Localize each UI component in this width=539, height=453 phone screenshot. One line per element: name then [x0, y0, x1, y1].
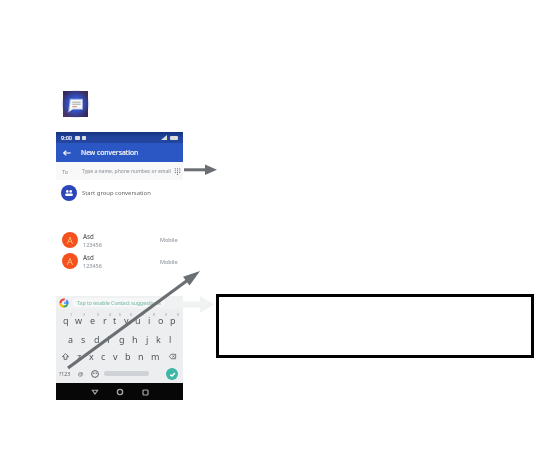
button[interactable]: j: [146, 333, 149, 345]
staticText: g: [119, 333, 125, 345]
button[interactable]: A: [56, 229, 183, 250]
staticText: y: [124, 314, 129, 326]
button[interactable]: Messages app icon: [63, 91, 88, 117]
staticText: A: [67, 234, 73, 247]
button[interactable]: Shift: [60, 351, 70, 361]
button[interactable]: Enter: [166, 368, 178, 380]
button[interactable]: b: [125, 350, 131, 362]
button[interactable]: m: [151, 350, 160, 362]
button[interactable]: d: [94, 333, 100, 345]
staticText: 6: [130, 312, 133, 317]
staticText: 123456: [83, 262, 102, 269]
staticText: m: [151, 350, 160, 362]
staticText: 9:00: [61, 134, 72, 141]
staticText: 5: [119, 312, 122, 317]
staticText: New conversation: [81, 148, 139, 157]
button[interactable]: Back: [89, 386, 101, 398]
staticText: 7: [142, 312, 145, 317]
staticText: A: [67, 255, 73, 268]
staticText: k: [156, 333, 161, 345]
button[interactable]: p: [170, 314, 176, 326]
button[interactable]: s: [81, 333, 86, 345]
button[interactable]: o: [158, 314, 164, 326]
button[interactable]: w: [75, 314, 83, 326]
staticText: x: [89, 350, 94, 362]
staticText: p: [170, 314, 176, 326]
button[interactable]: f: [107, 333, 111, 345]
staticText: Asd: [83, 253, 94, 261]
staticText: i: [148, 314, 151, 326]
button[interactable]: Start group conversation: [56, 180, 183, 206]
staticText: 8: [153, 312, 156, 317]
button[interactable]: q: [63, 314, 69, 326]
staticText: u: [135, 314, 141, 326]
staticText: 4: [109, 312, 112, 317]
staticText: Mobile: [160, 258, 178, 265]
staticText: a: [68, 333, 74, 345]
staticText: r: [103, 314, 107, 326]
button[interactable]: t: [113, 314, 117, 326]
staticText: t: [113, 314, 117, 326]
button[interactable]: Recent apps: [139, 386, 151, 398]
button[interactable]: @: [78, 370, 84, 378]
button[interactable]: y: [124, 314, 129, 326]
button[interactable]: Tap to enable Contact suggestions: [56, 296, 183, 309]
button[interactable]: Backspace: [167, 351, 177, 361]
button[interactable]: l: [169, 333, 172, 345]
staticText: h: [132, 333, 138, 345]
staticText: Asd: [83, 232, 94, 240]
staticText: 9: [165, 312, 168, 317]
staticText: v: [113, 350, 118, 362]
button[interactable]: h: [132, 333, 138, 345]
staticText: s: [81, 333, 86, 345]
button[interactable]: a: [68, 333, 74, 345]
staticText: f: [107, 333, 111, 345]
staticText: q: [63, 314, 69, 326]
staticText: n: [138, 350, 144, 362]
button[interactable]: e: [90, 314, 96, 326]
button[interactable]: ?123: [59, 370, 71, 377]
button[interactable]: Home: [114, 386, 126, 398]
button[interactable]: g: [119, 333, 125, 345]
staticText: l: [169, 333, 172, 345]
staticText: ?123: [59, 370, 71, 377]
button[interactable]: Dialpad: [171, 165, 183, 177]
button[interactable]: i: [148, 314, 151, 326]
button[interactable]: n: [138, 350, 144, 362]
staticText: To: [62, 168, 69, 175]
button[interactable]: A: [56, 250, 183, 272]
staticText: j: [146, 333, 149, 345]
button[interactable]: z: [77, 350, 82, 362]
staticText: @: [78, 370, 84, 378]
staticText: 3: [97, 312, 100, 317]
staticText: 1: [70, 312, 73, 317]
staticText: Mobile: [160, 236, 178, 243]
staticText: 0: [177, 312, 180, 317]
staticText: Start group conversation: [82, 189, 151, 197]
staticText: z: [77, 350, 82, 362]
button[interactable]: x: [89, 350, 94, 362]
staticText: c: [101, 350, 106, 362]
staticText: o: [158, 314, 164, 326]
button[interactable]: k: [156, 333, 161, 345]
staticText: Tap to enable Contact suggestions: [77, 299, 161, 306]
button[interactable]: v: [113, 350, 118, 362]
staticText: e: [90, 314, 96, 326]
staticText: w: [75, 314, 83, 326]
button[interactable]: Navigate up: [61, 147, 72, 158]
button[interactable]: u: [135, 314, 141, 326]
staticText: Type a name, phone number, or email: [82, 168, 171, 175]
button[interactable]: Emoji: [90, 369, 99, 378]
staticText: d: [94, 333, 100, 345]
button[interactable]: c: [101, 350, 106, 362]
staticText: 123456: [83, 241, 102, 248]
button[interactable]: r: [103, 314, 107, 326]
staticText: b: [125, 350, 131, 362]
staticText: 2: [83, 312, 86, 317]
